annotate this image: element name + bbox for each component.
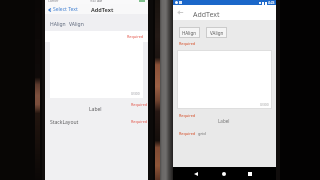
staticText: 0/300: [131, 92, 140, 96]
staticText: HAlign: [50, 21, 66, 28]
staticText: Required: [127, 34, 144, 39]
staticText: StackLayout: [50, 119, 79, 126]
staticText: AddText: [193, 10, 220, 20]
staticText: Carrier: [48, 0, 59, 3]
button[interactable]: Home: [219, 169, 229, 179]
staticText: 0/300: [260, 103, 269, 107]
staticText: grid: [198, 131, 206, 136]
staticText: VAlign: [210, 30, 224, 36]
staticText: 9:41 AM: [90, 0, 103, 3]
staticText: Required: [179, 131, 196, 136]
button[interactable]: Back: [176, 8, 185, 17]
button[interactable]: Select Text: [48, 6, 78, 13]
staticText: Label: [89, 106, 102, 113]
staticText: 4:23: [268, 1, 275, 5]
button[interactable]: StackLayout: [45, 115, 148, 128]
button[interactable]: Recent apps: [245, 169, 255, 179]
staticText: AddText: [91, 6, 114, 13]
staticText: Label: [218, 118, 230, 124]
button[interactable]: HAlign: [50, 21, 84, 28]
button[interactable]: HAlign: [179, 27, 200, 38]
staticText: Select Text: [53, 6, 78, 13]
staticText: Required: [131, 119, 148, 124]
staticText: VAlign: [69, 21, 84, 28]
staticText: HAlign: [182, 30, 197, 36]
button[interactable]: 0/300: [177, 50, 272, 109]
staticText: Required: [179, 113, 196, 118]
button[interactable]: Back: [191, 169, 201, 179]
staticText: Required: [131, 102, 148, 107]
staticText: Required: [179, 41, 196, 46]
button[interactable]: VAlign: [206, 27, 227, 38]
